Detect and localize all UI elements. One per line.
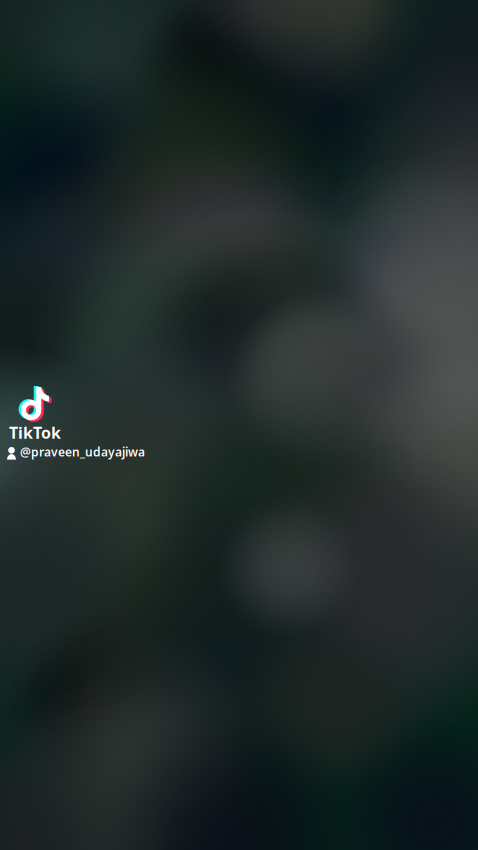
- staticText: @praveen_udayajiwa: [20, 444, 145, 460]
- staticText: TikTok: [9, 422, 61, 443]
